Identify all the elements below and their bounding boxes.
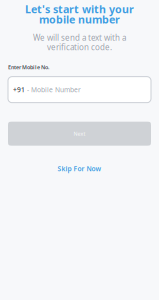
button[interactable]: Next bbox=[8, 122, 151, 146]
staticText: Let's start with your bbox=[25, 2, 134, 16]
staticText: +91 bbox=[13, 85, 25, 94]
button[interactable]: Skip For Now bbox=[8, 163, 151, 175]
staticText: mobile number bbox=[39, 12, 120, 26]
staticText: Mobile Number bbox=[31, 85, 81, 94]
staticText: Enter Mobile No. bbox=[8, 64, 49, 71]
staticText: Skip For Now bbox=[57, 164, 101, 173]
staticText: - bbox=[25, 85, 31, 94]
staticText: Next bbox=[73, 130, 85, 137]
staticText: We will send a text with a bbox=[33, 32, 126, 43]
button[interactable]: +91 bbox=[8, 77, 151, 103]
staticText: verification code. bbox=[47, 42, 112, 53]
